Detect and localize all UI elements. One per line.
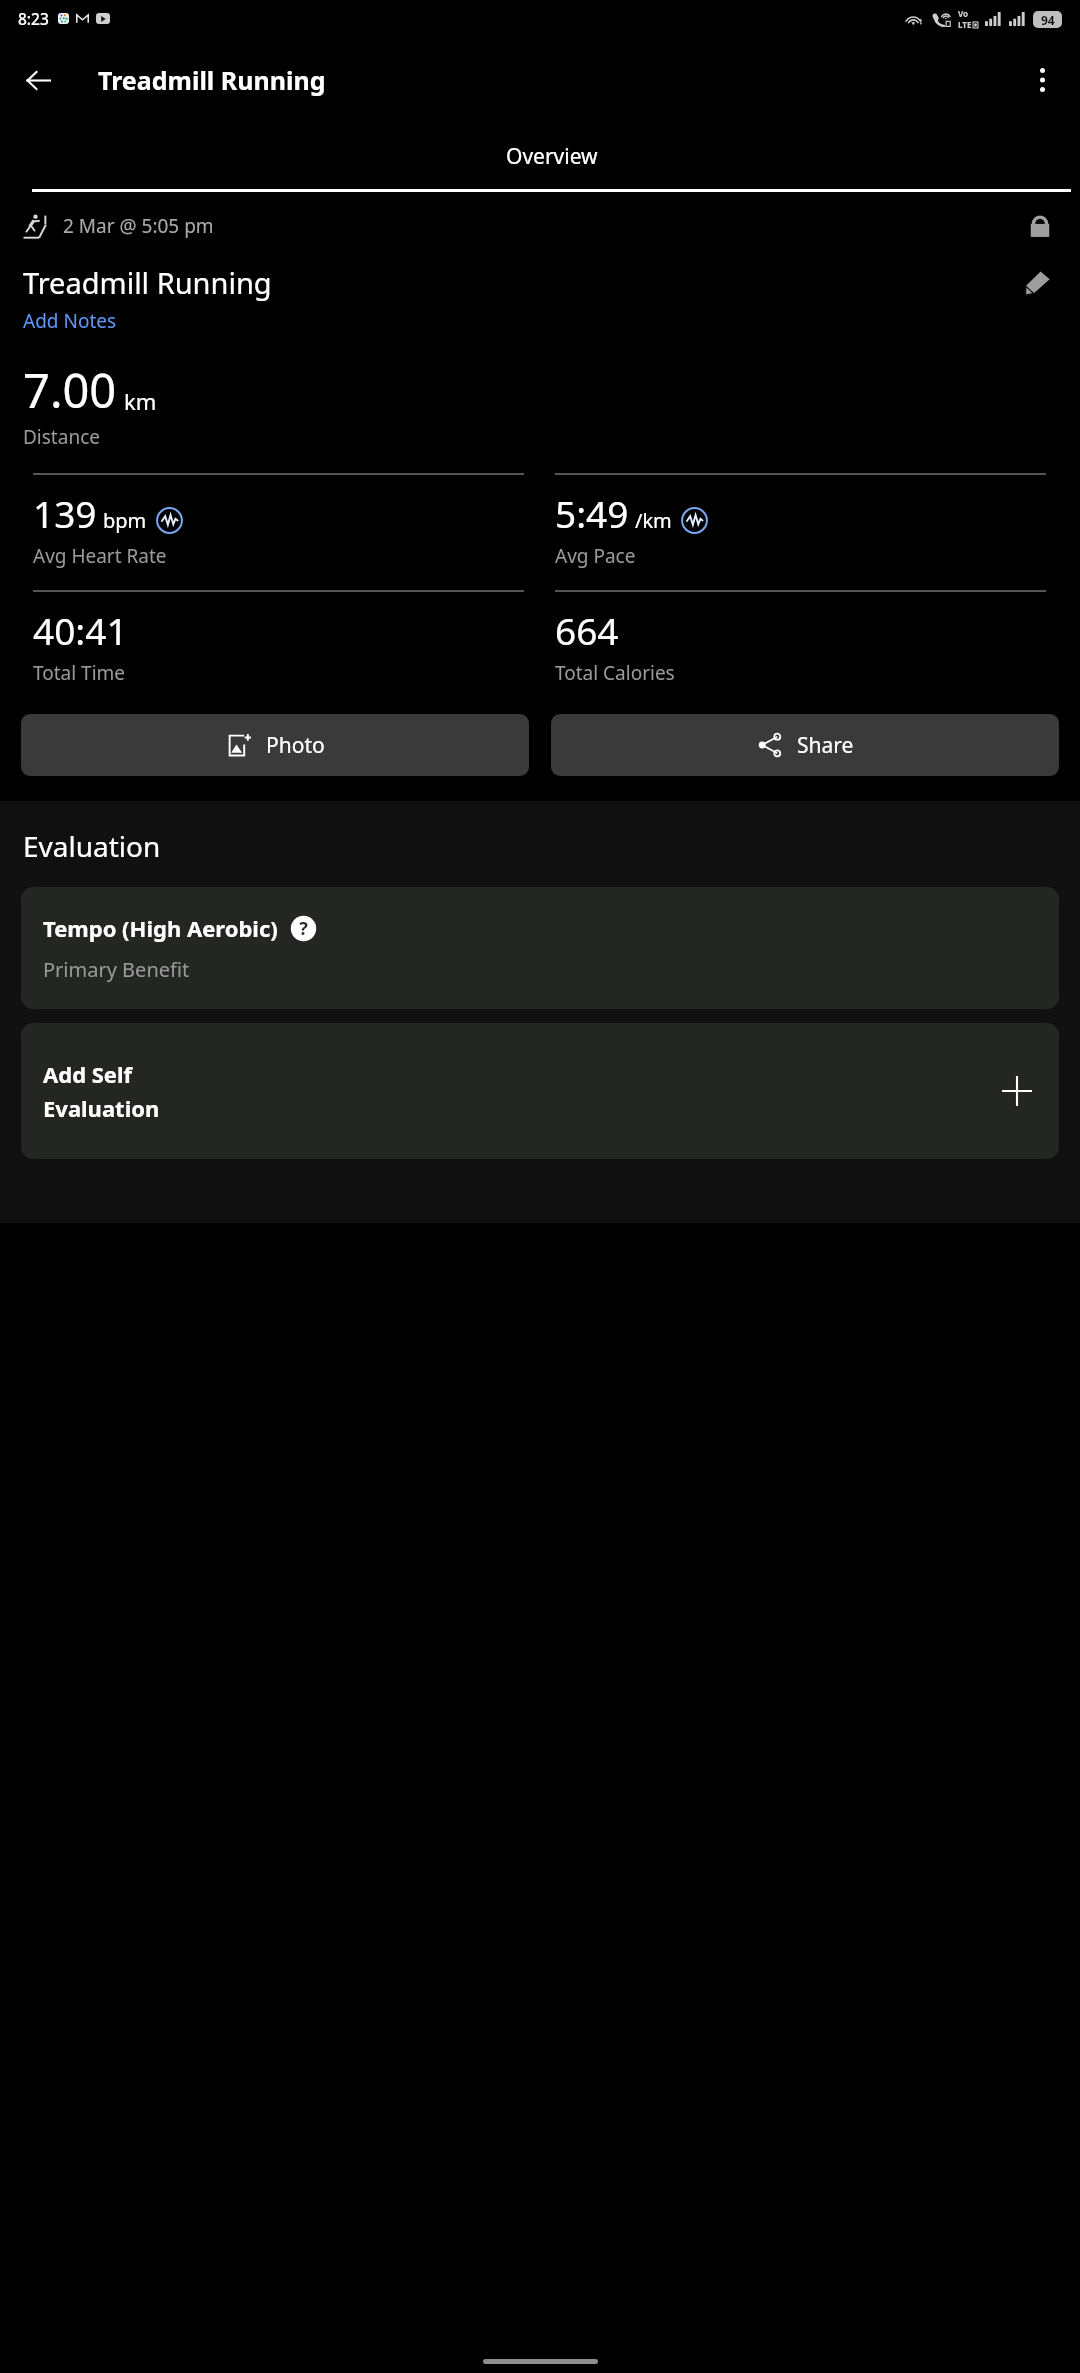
staticText: Vo — [958, 8, 969, 19]
staticText: Total Calories — [555, 660, 675, 686]
staticText: Treadmill Running — [98, 63, 326, 97]
button[interactable]: Edit — [1019, 264, 1057, 302]
staticText: Tempo (High Aerobic) — [43, 913, 278, 943]
staticText: 2 Mar @ 5:05 pm — [63, 213, 214, 239]
staticText: Avg Heart Rate — [33, 543, 167, 569]
staticText: ? — [299, 916, 308, 941]
button[interactable]: Tempo (High Aerobic) — [21, 887, 1059, 1009]
staticText: Primary Benefit — [43, 956, 190, 983]
staticText: 40:41 — [33, 605, 128, 655]
button[interactable]: Share — [551, 714, 1059, 776]
staticText: km — [124, 386, 157, 416]
staticText: 5:49 — [555, 488, 629, 538]
button[interactable]: Locked — [1023, 209, 1057, 243]
staticText: Add Self Evaluation — [43, 1059, 160, 1124]
staticText: Overview — [506, 142, 598, 171]
button[interactable]: Overview — [23, 123, 1080, 192]
staticText: Total Time — [33, 660, 126, 686]
staticText: 8:23 — [18, 8, 49, 29]
staticText: Share — [797, 731, 854, 760]
staticText: 664 — [555, 605, 619, 655]
staticText: bpm — [103, 507, 147, 534]
staticText: Distance — [23, 424, 100, 450]
staticText: Photo — [266, 731, 325, 760]
staticText: 139 — [33, 488, 97, 538]
button[interactable]: Photo — [21, 714, 529, 776]
button[interactable]: Back — [14, 56, 62, 104]
button[interactable]: Add Notes — [23, 308, 117, 334]
staticText: Add Notes — [23, 308, 117, 334]
button[interactable]: Add Self Evaluation — [21, 1023, 1059, 1159]
staticText: LTE — [958, 19, 972, 30]
staticText: Treadmill Running — [23, 263, 272, 302]
button[interactable]: More options — [1018, 56, 1066, 104]
staticText: Avg Pace — [555, 543, 636, 569]
staticText: 7.00 — [23, 358, 117, 422]
staticText: /km — [635, 507, 672, 534]
staticText: Evaluation — [23, 827, 161, 865]
staticText: 94 — [1041, 12, 1055, 28]
